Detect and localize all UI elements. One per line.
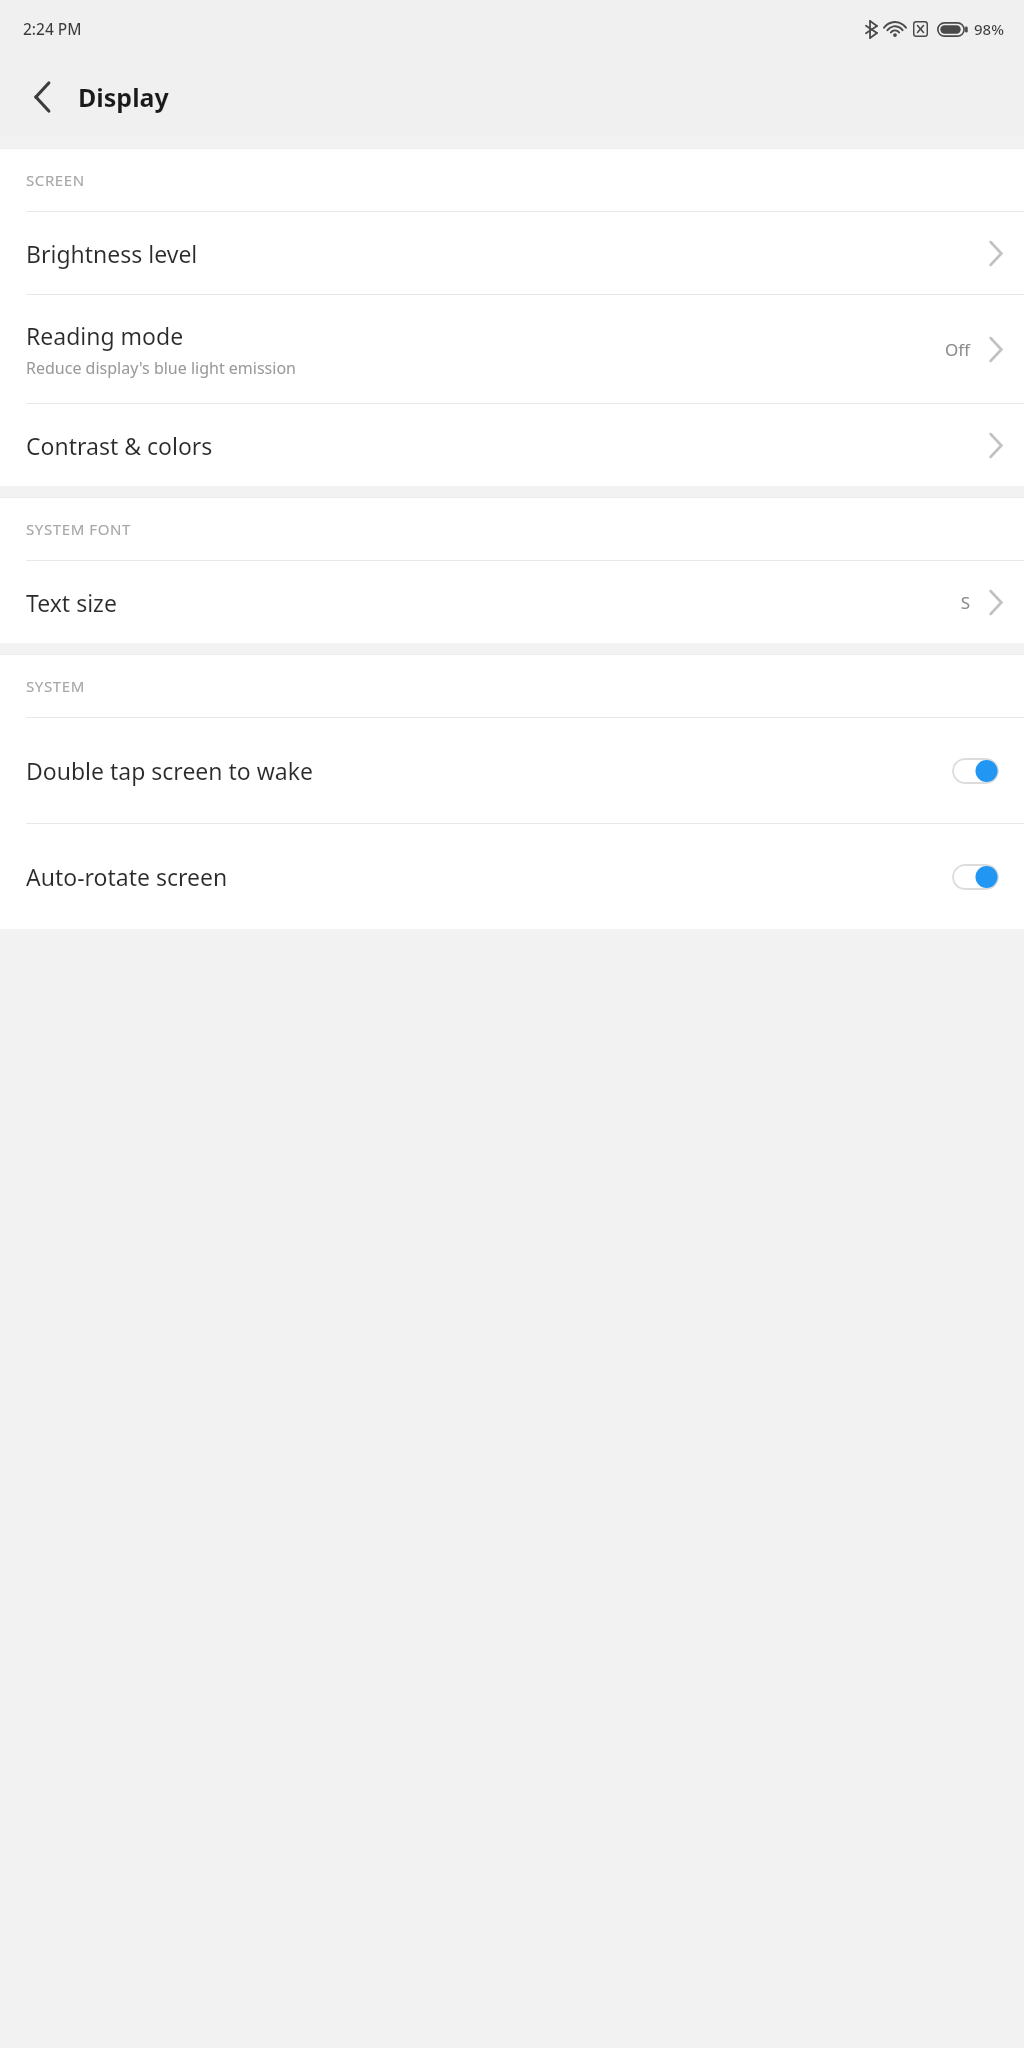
staticText: Reduce display's blue light emission <box>26 357 296 379</box>
staticText: Off <box>945 338 970 361</box>
button[interactable]: Auto-rotate screen <box>0 824 1024 929</box>
button[interactable]: Reading mode <box>0 295 1024 403</box>
staticText: S <box>960 591 970 614</box>
button[interactable]: Toggle on <box>952 758 999 784</box>
staticText: Text size <box>26 587 117 618</box>
button[interactable]: Brightness level <box>0 212 1024 294</box>
staticText: 98% <box>974 19 1004 39</box>
button[interactable]: Double tap screen to wake <box>0 718 1024 823</box>
button[interactable]: Contrast & colors <box>0 404 1024 486</box>
staticText: Double tap screen to wake <box>26 755 952 786</box>
button[interactable]: Toggle on <box>952 864 999 890</box>
staticText: Display <box>78 80 169 114</box>
staticText: Auto-rotate screen <box>26 861 952 892</box>
staticText: Contrast & colors <box>26 430 213 461</box>
staticText: Brightness level <box>26 238 198 269</box>
staticText: SYSTEM <box>26 676 85 696</box>
staticText: SYSTEM FONT <box>26 519 131 539</box>
staticText: Reading mode <box>26 320 184 351</box>
staticText: 2:24 PM <box>23 18 82 39</box>
button[interactable]: Back <box>12 67 72 127</box>
button[interactable]: Text size <box>0 561 1024 643</box>
staticText: SCREEN <box>26 170 85 190</box>
